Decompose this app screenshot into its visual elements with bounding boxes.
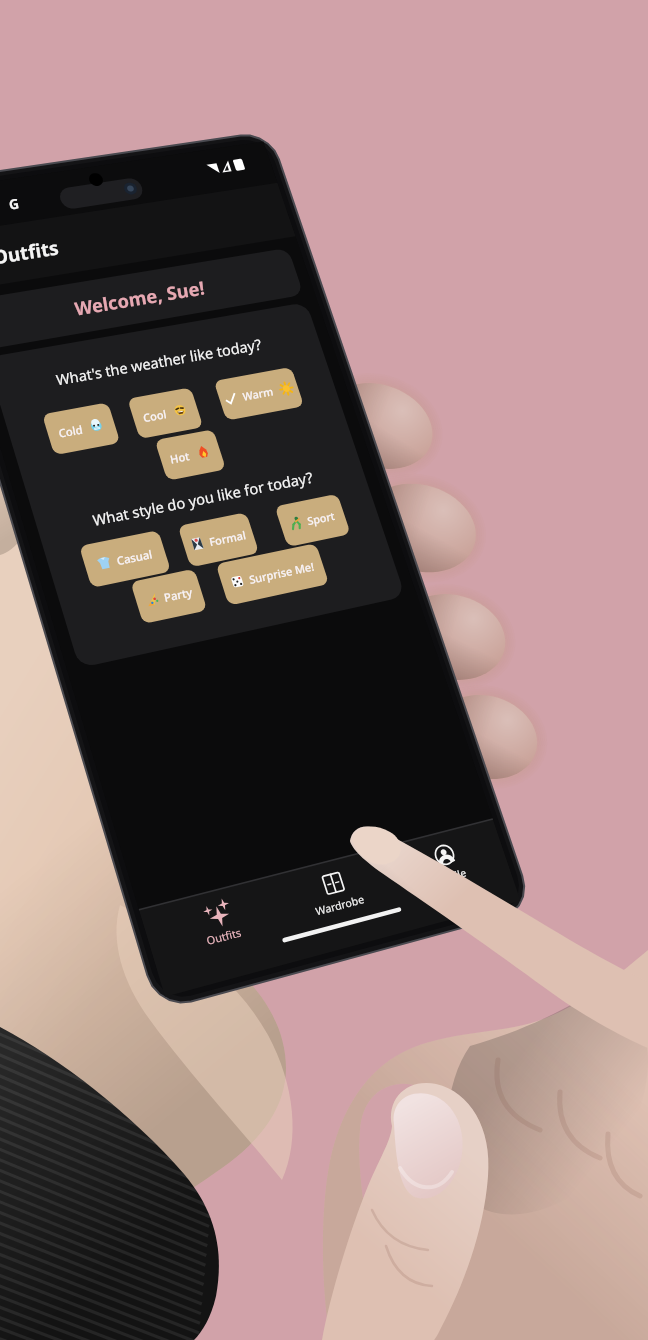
button[interactable] bbox=[0, 0, 648, 1340]
